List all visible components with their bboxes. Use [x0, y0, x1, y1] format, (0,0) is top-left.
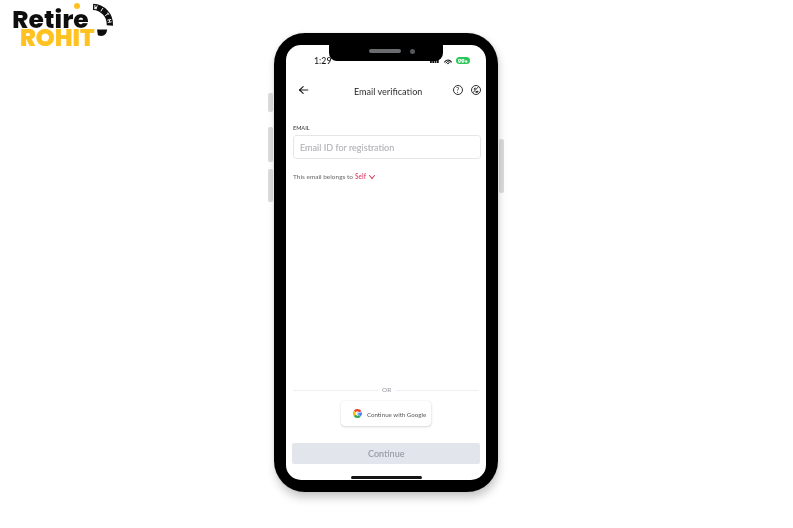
- button[interactable]: Continue: [292, 443, 480, 464]
- staticText: OR: [382, 386, 392, 394]
- staticText: 99+: [458, 57, 468, 64]
- staticText: 1:29: [314, 55, 332, 66]
- button[interactable]: Self: [355, 173, 375, 181]
- staticText: Continue with Google: [367, 411, 427, 418]
- staticText: Email verification: [354, 86, 423, 97]
- button[interactable]: Help: [446, 78, 470, 102]
- button[interactable]: Email ID for registration: [293, 135, 481, 159]
- staticText: Self: [355, 173, 366, 181]
- staticText: Retire: [12, 2, 89, 37]
- staticText: ?: [456, 86, 460, 94]
- staticText: ROHIT: [20, 21, 95, 55]
- staticText: This email belongs to: [293, 173, 355, 181]
- staticText: EMAIL: [293, 125, 310, 132]
- button[interactable]: Back: [291, 78, 315, 102]
- staticText: Continue: [368, 448, 405, 459]
- staticText: Email ID for registration: [300, 142, 395, 153]
- button[interactable]: Continue with Google: [341, 401, 431, 426]
- button[interactable]: Call support: [464, 78, 486, 102]
